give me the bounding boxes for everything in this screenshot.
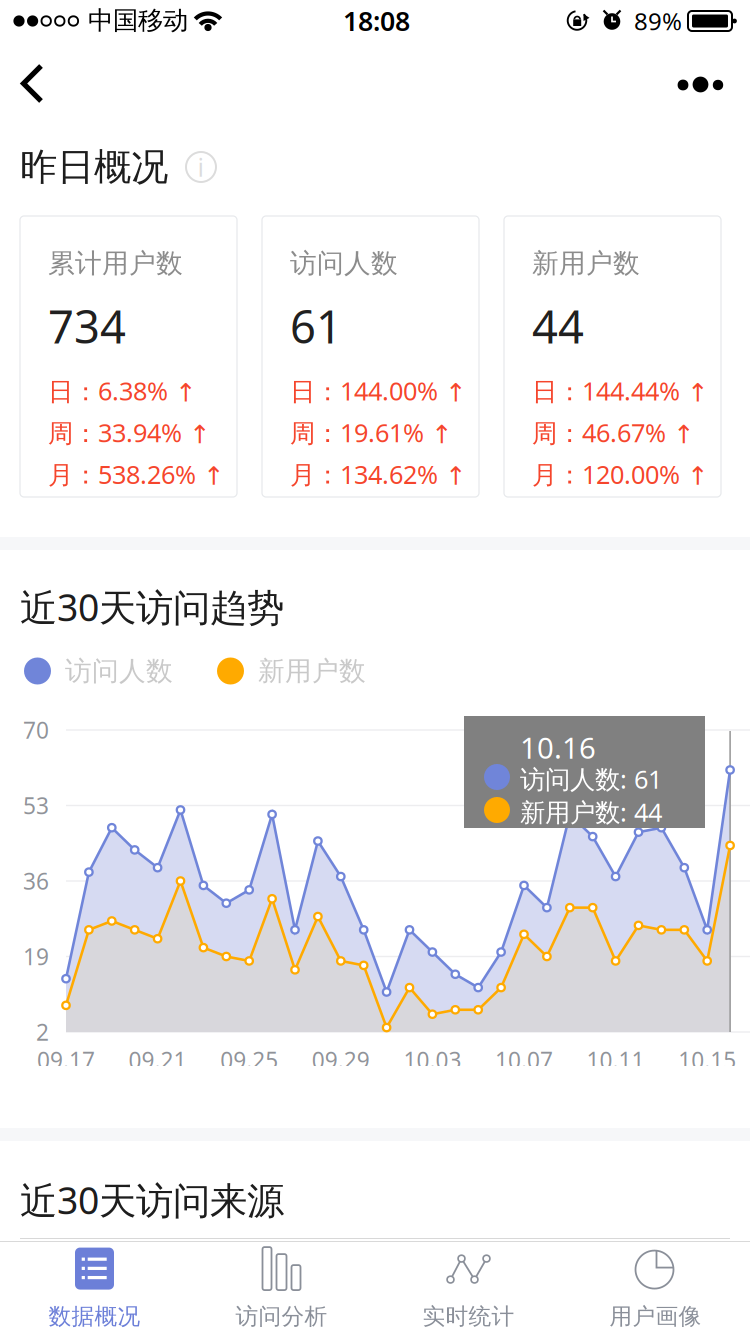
- staticText: 昨日概况: [20, 144, 168, 190]
- staticText: 日：6.38% ↑: [48, 374, 196, 408]
- button[interactable]: 访问分析: [188, 1242, 375, 1334]
- staticText: i: [197, 150, 204, 184]
- staticText: 累计用户数: [48, 247, 183, 280]
- staticText: 新用户数: [258, 655, 366, 687]
- button[interactable]: More options: [0, 0, 750, 1334]
- staticText: 日：144.44% ↑: [532, 374, 708, 408]
- button[interactable]: 新用户数: [504, 216, 721, 497]
- staticText: 10.11: [587, 1045, 645, 1075]
- staticText: 近30天访问趋势: [20, 582, 284, 632]
- staticText: 70: [23, 715, 49, 745]
- staticText: 访问人数: 61: [520, 762, 662, 796]
- staticText: 访问人数: [65, 655, 173, 687]
- button[interactable]: 访问人数: [262, 216, 479, 497]
- button[interactable]: 昨日概况: [20, 141, 320, 193]
- staticText: 近30天访问来源: [20, 1175, 284, 1225]
- staticText: 09.25: [220, 1045, 278, 1075]
- staticText: 周：33.94% ↑: [48, 416, 210, 449]
- staticText: 09.29: [312, 1045, 370, 1075]
- staticText: 数据概况: [48, 1303, 140, 1330]
- staticText: 中国移动: [88, 5, 188, 36]
- button[interactable]: 累计用户数: [20, 216, 237, 497]
- staticText: 10.15: [678, 1045, 736, 1075]
- staticText: 61: [290, 296, 342, 356]
- staticText: 新用户数: 44: [520, 795, 662, 829]
- staticText: 访问分析: [235, 1303, 327, 1330]
- staticText: 89%: [634, 5, 682, 37]
- staticText: 实时统计: [422, 1303, 514, 1330]
- staticText: 09.21: [129, 1045, 187, 1075]
- staticText: 19: [23, 941, 49, 971]
- button[interactable]: 数据概况: [1, 1242, 188, 1334]
- staticText: 2: [36, 1017, 49, 1047]
- staticText: 10.07: [495, 1045, 553, 1075]
- staticText: 734: [48, 296, 126, 356]
- staticText: 日：144.00% ↑: [290, 374, 466, 408]
- staticText: 53: [23, 790, 49, 820]
- staticText: 月：538.26% ↑: [48, 457, 224, 491]
- staticText: 月：134.62% ↑: [290, 457, 466, 491]
- staticText: 10.16: [520, 728, 596, 767]
- staticText: 月：120.00% ↑: [532, 457, 708, 491]
- staticText: 周：46.67% ↑: [532, 416, 694, 449]
- button[interactable]: 实时统计: [375, 1242, 562, 1334]
- staticText: 周：19.61% ↑: [290, 416, 452, 449]
- staticText: 访问人数: [290, 247, 398, 280]
- staticText: 44: [532, 296, 584, 356]
- staticText: 新用户数: [532, 247, 640, 280]
- staticText: 10.03: [403, 1045, 461, 1075]
- staticText: 09.17: [37, 1045, 95, 1075]
- staticText: 36: [23, 866, 49, 896]
- button[interactable]: Back: [0, 0, 750, 1334]
- staticText: 18:08: [343, 3, 410, 38]
- button[interactable]: 用户画像: [562, 1242, 749, 1334]
- staticText: 用户画像: [609, 1303, 701, 1330]
